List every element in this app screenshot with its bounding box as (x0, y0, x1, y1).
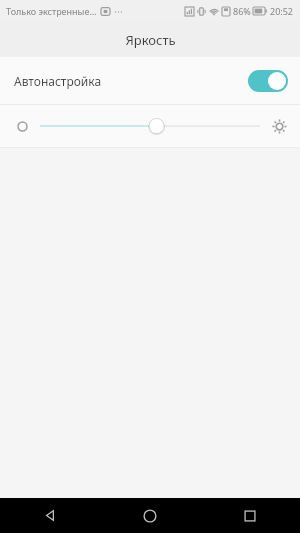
button[interactable]: Домой (100, 498, 200, 533)
staticText: Автонастройка (14, 73, 102, 89)
staticText: Яркость (125, 31, 176, 49)
button[interactable]: Назад (0, 498, 100, 533)
button[interactable]: Автонастройка (248, 70, 288, 92)
button[interactable]: Яркость (40, 113, 260, 139)
button[interactable]: Автонастройка (0, 57, 300, 104)
button[interactable]: Минимальная яркость (12, 116, 32, 136)
staticText: Только экстренные… (6, 5, 97, 17)
staticText: 20:52 (270, 5, 294, 17)
button[interactable]: Последние приложения (200, 498, 300, 533)
staticText: 86% (233, 5, 251, 17)
button[interactable]: Максимальная яркость (268, 115, 290, 137)
